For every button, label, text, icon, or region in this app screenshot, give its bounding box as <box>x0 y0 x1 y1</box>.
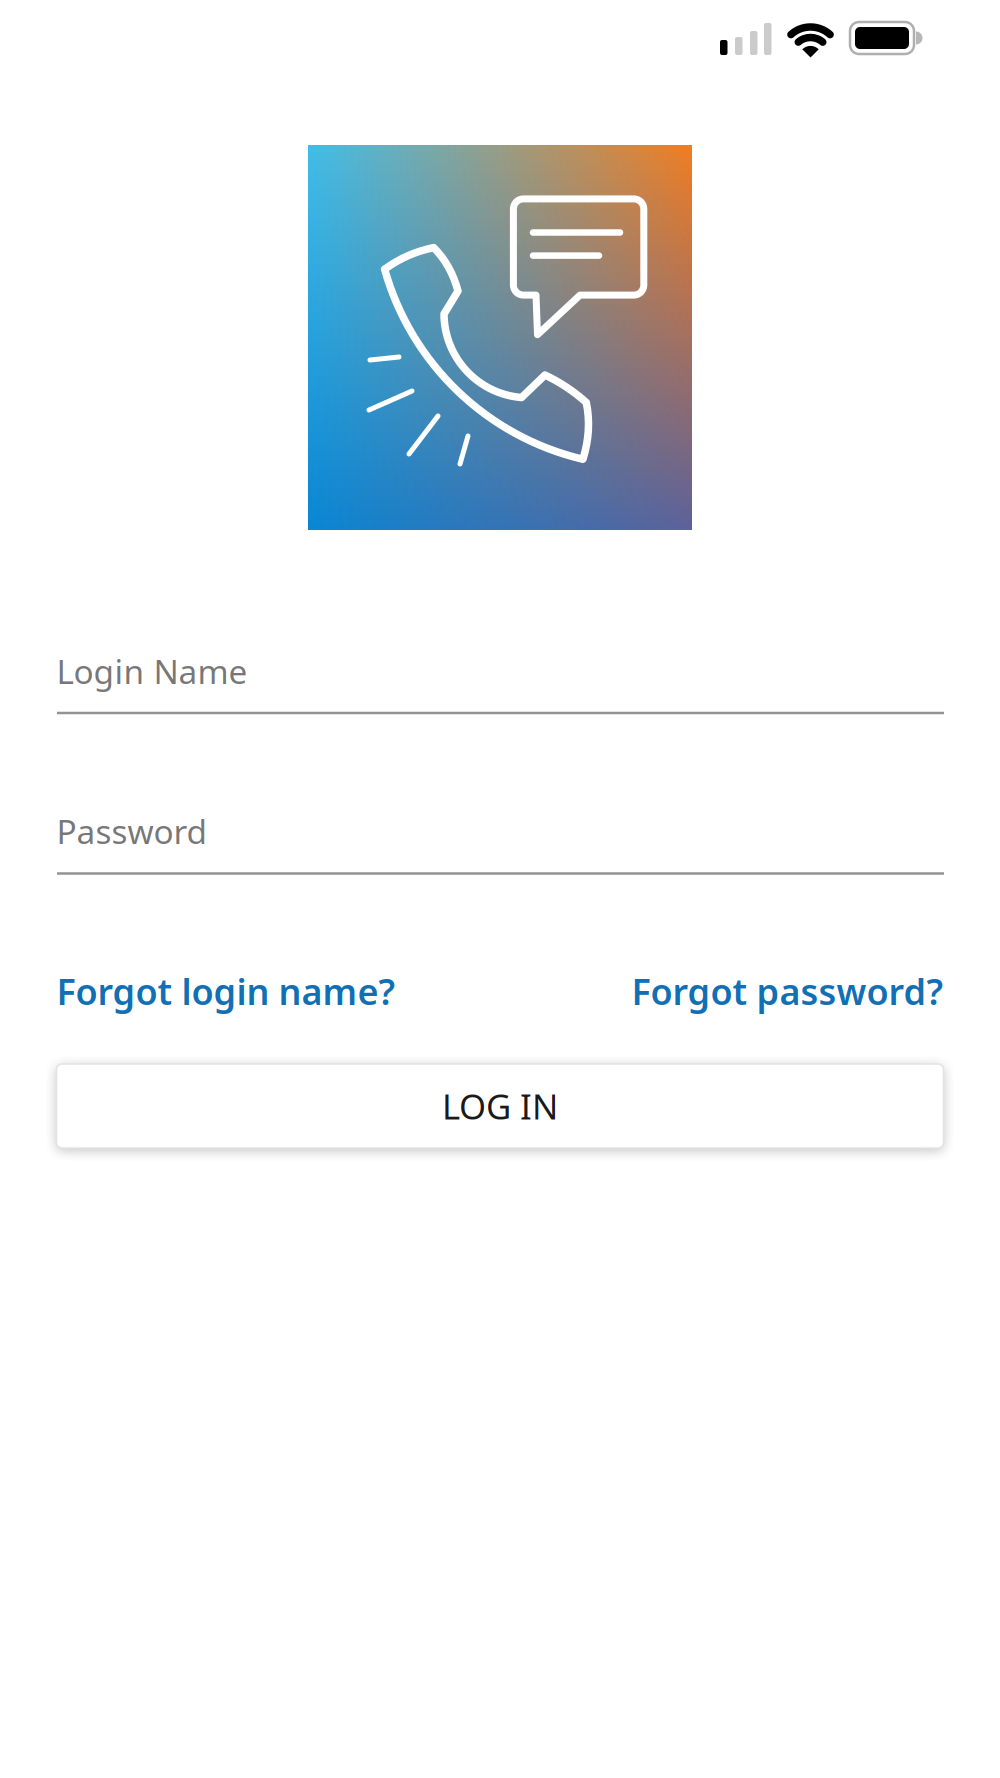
textField[interactable]: Password <box>56 801 943 861</box>
textField[interactable]: Login Name <box>56 641 943 701</box>
staticText: Login Name <box>56 649 247 693</box>
staticText: Password <box>56 809 207 853</box>
button[interactable]: LOG IN <box>56 1064 943 1148</box>
button[interactable]: Forgot login name? <box>56 967 395 1015</box>
staticText: LOG IN <box>442 1083 558 1129</box>
staticText: Forgot password? <box>631 967 943 1015</box>
staticText: Forgot login name? <box>56 967 395 1015</box>
button[interactable]: Forgot password? <box>631 967 943 1015</box>
